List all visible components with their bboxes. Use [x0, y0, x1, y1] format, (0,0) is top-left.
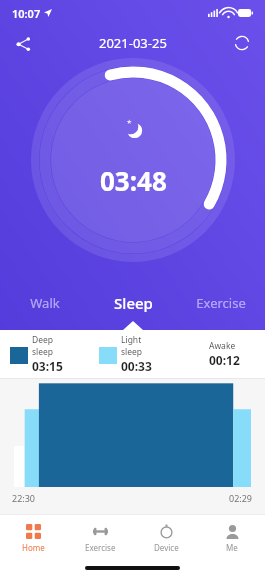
staticText: 2021-03-25	[99, 34, 167, 52]
button[interactable]: Exercise	[67, 515, 133, 561]
staticText: sleep	[32, 346, 54, 358]
button[interactable]: Walk	[0, 276, 89, 330]
button[interactable]: Deep	[10, 330, 89, 378]
staticText: Device	[154, 542, 179, 553]
button[interactable]: Light	[99, 330, 177, 378]
staticText: Exercise	[85, 542, 116, 553]
button[interactable]: Refresh	[227, 28, 257, 58]
staticText: 03:48	[100, 163, 167, 198]
button[interactable]: Share	[8, 28, 38, 58]
staticText: 03:15	[32, 358, 63, 374]
staticText: Walk	[30, 294, 60, 312]
staticText: 02:29	[229, 492, 253, 504]
staticText: sleep	[121, 346, 143, 358]
button[interactable]: Sleep	[89, 276, 177, 330]
staticText: Exercise	[196, 294, 246, 312]
staticText: Home	[22, 542, 45, 553]
button[interactable]: Device	[133, 515, 199, 561]
staticText: Awake	[209, 340, 236, 352]
staticText: Sleep	[114, 293, 153, 313]
staticText: 00:12	[209, 352, 240, 368]
staticText: 10:07	[12, 6, 41, 21]
button[interactable]: Awake	[187, 330, 265, 378]
staticText: Me	[226, 542, 238, 553]
staticText: Deep	[32, 334, 54, 346]
staticText: 22:30	[12, 492, 36, 504]
button[interactable]: Home	[0, 515, 67, 561]
button[interactable]: Me	[199, 515, 265, 561]
staticText: Light	[121, 334, 142, 346]
button[interactable]: Exercise	[177, 276, 265, 330]
staticText: 00:33	[121, 358, 152, 374]
